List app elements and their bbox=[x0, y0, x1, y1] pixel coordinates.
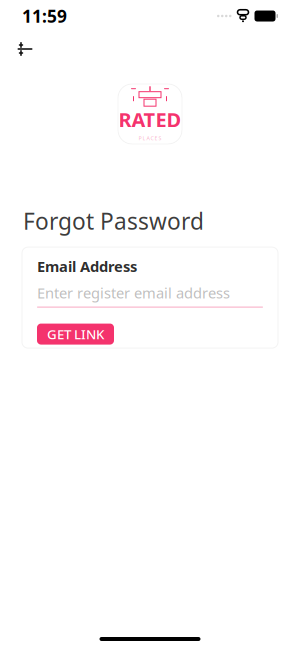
staticText: P L A C E S bbox=[138, 135, 161, 142]
staticText: Enter register email address bbox=[37, 283, 230, 303]
staticText: 11:59 bbox=[22, 4, 67, 27]
staticText: Email Address bbox=[37, 257, 137, 276]
staticText: Forgot Password bbox=[23, 206, 204, 236]
button[interactable]: Back bbox=[8, 34, 42, 64]
staticText: RATED bbox=[118, 106, 181, 133]
button[interactable]: GET LINK bbox=[37, 324, 114, 345]
staticText: GET LINK bbox=[47, 325, 104, 343]
